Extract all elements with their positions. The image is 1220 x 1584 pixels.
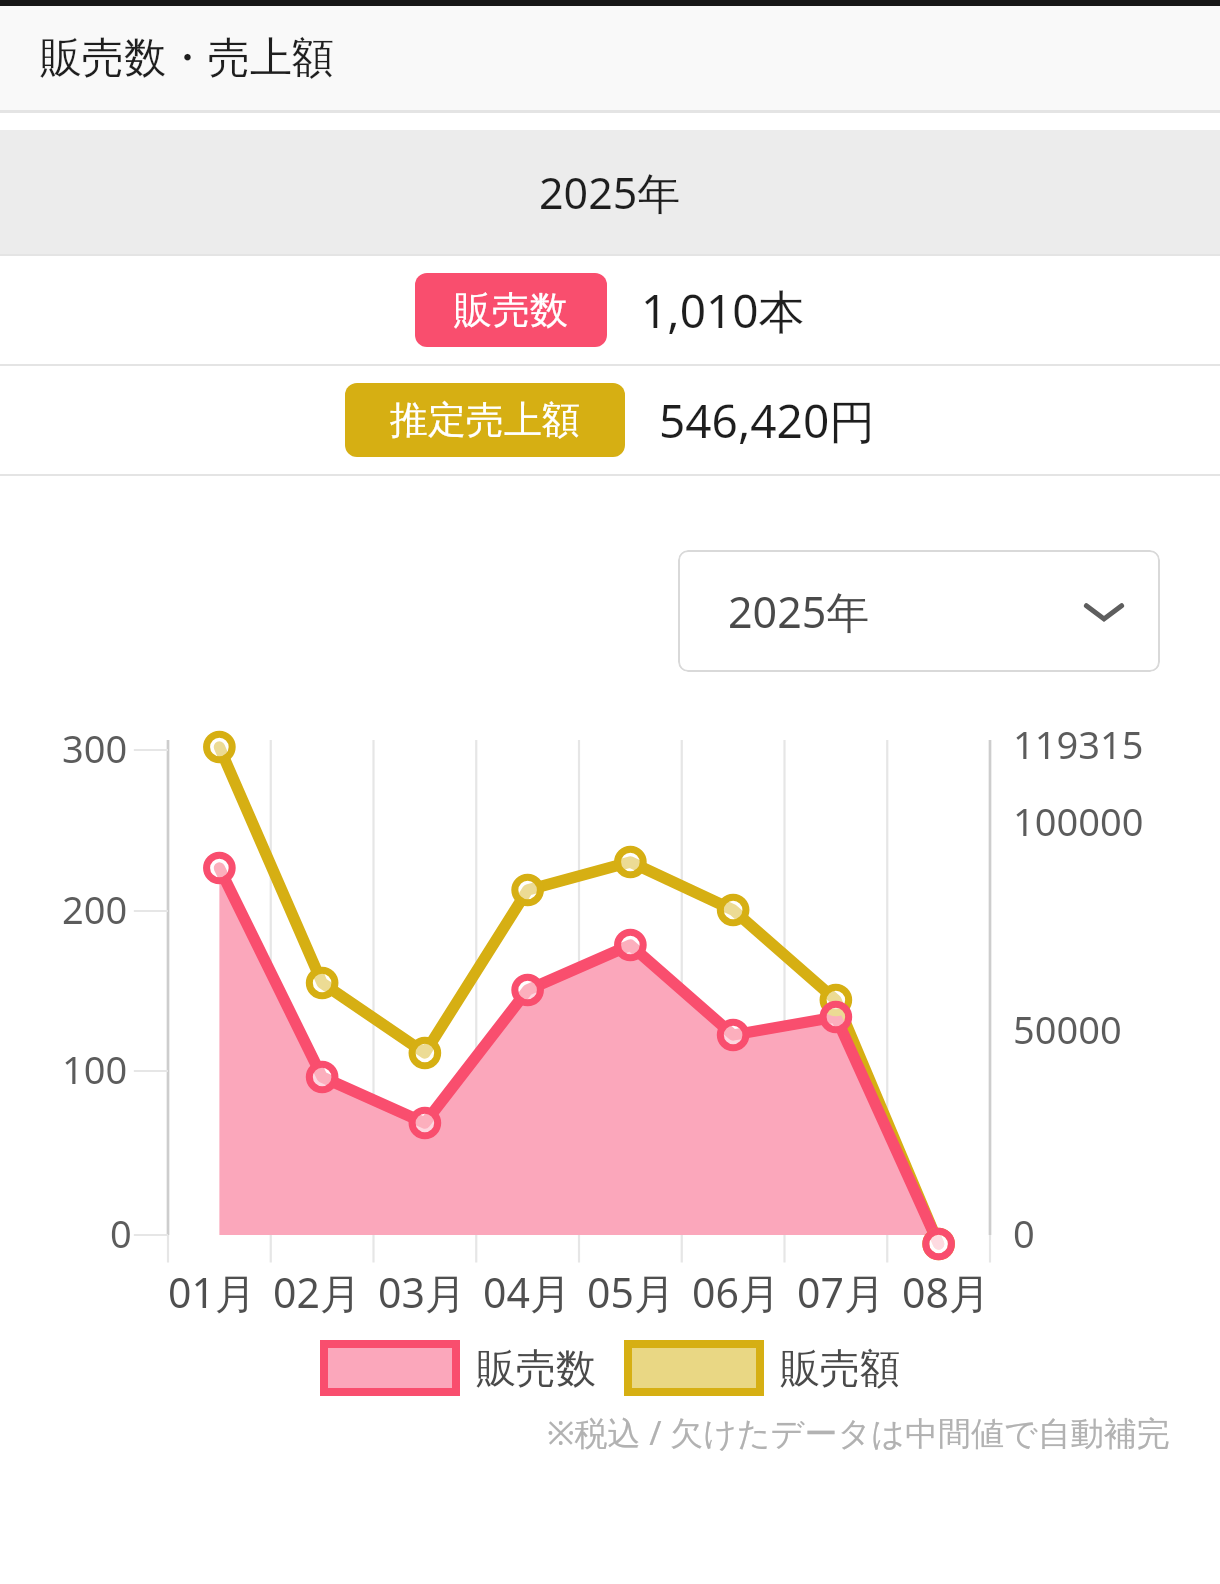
button[interactable]: 販売数 [0, 256, 1220, 364]
staticText: 02月 [273, 1264, 361, 1320]
staticText: 1,010本 [641, 279, 805, 342]
staticText: 100 [62, 1043, 128, 1095]
staticText: 販売数・売上額 [40, 32, 334, 85]
staticText: ※税込 / 欠けたデータは中間値で自動補完 [547, 1410, 1170, 1455]
staticText: 100000 [1013, 795, 1144, 847]
staticText: 05月 [587, 1264, 675, 1320]
staticText: 546,420円 [659, 389, 876, 452]
staticText: 2025年 [728, 582, 870, 641]
staticText: 06月 [692, 1264, 780, 1320]
staticText: 300 [62, 722, 128, 774]
other: Expand year selector [1082, 589, 1126, 633]
button[interactable]: 推定売上額 [0, 366, 1220, 474]
staticText: 推定売上額 [390, 396, 580, 444]
staticText: 01月 [168, 1264, 256, 1320]
staticText: 販売数 [476, 1343, 596, 1393]
staticText: 119315 [1013, 718, 1144, 770]
staticText: 0 [1013, 1207, 1035, 1259]
staticText: 07月 [797, 1264, 885, 1320]
staticText: 販売額 [780, 1343, 900, 1393]
staticText: 販売数 [454, 286, 568, 334]
staticText: 2025年 [539, 163, 681, 222]
staticText: 04月 [483, 1264, 571, 1320]
staticText: 200 [62, 883, 128, 935]
staticText: 08月 [902, 1264, 990, 1320]
staticText: 03月 [378, 1264, 466, 1320]
button[interactable]: 2025年 [678, 550, 1160, 672]
staticText: 0 [110, 1207, 132, 1259]
staticText: 50000 [1013, 1003, 1122, 1055]
button[interactable]: 販売数・売上額 [0, 6, 1220, 110]
